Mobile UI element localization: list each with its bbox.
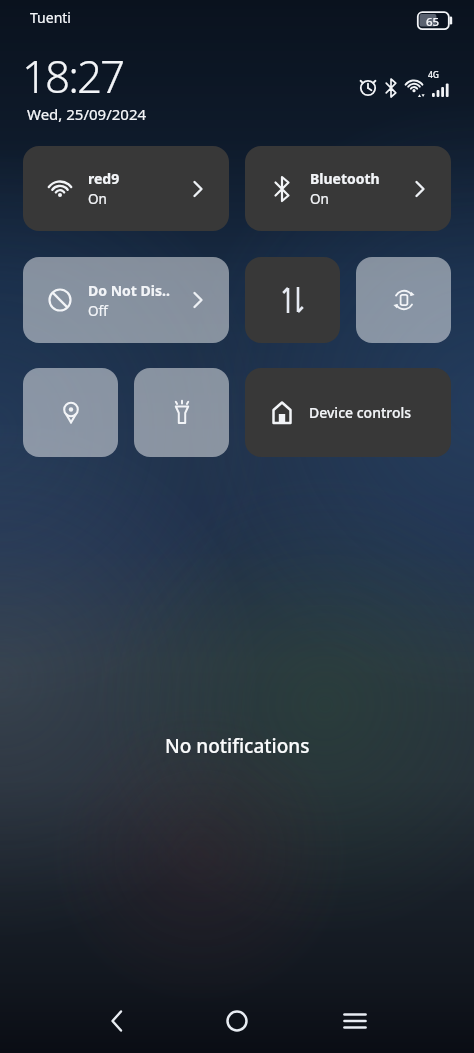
staticText: Device controls [309, 403, 412, 422]
button[interactable]: Do Not Dis.. [23, 257, 229, 343]
button[interactable] [356, 257, 451, 343]
button[interactable] [23, 368, 118, 457]
staticText: 18:27 [22, 46, 124, 106]
button[interactable] [134, 368, 229, 457]
staticText: red9 [88, 169, 120, 188]
staticText: Bluetooth [310, 169, 380, 188]
staticText: Wed, 25/09/2024 [27, 104, 147, 124]
button[interactable]: red9 [23, 146, 229, 231]
staticText: On [310, 190, 329, 208]
button[interactable]: Device controls [245, 368, 451, 457]
staticText: On [88, 190, 107, 208]
staticText: Tuenti [30, 8, 71, 27]
staticText: Do Not Dis.. [88, 281, 170, 300]
button[interactable]: Bluetooth [245, 146, 451, 231]
button[interactable] [325, 991, 385, 1051]
button[interactable] [245, 257, 340, 343]
staticText: Off [88, 302, 108, 320]
staticText: 4G [428, 69, 440, 81]
staticText: No notifications [165, 733, 310, 759]
button[interactable] [207, 991, 267, 1051]
button[interactable] [88, 991, 148, 1051]
staticText: 65 [426, 14, 440, 30]
